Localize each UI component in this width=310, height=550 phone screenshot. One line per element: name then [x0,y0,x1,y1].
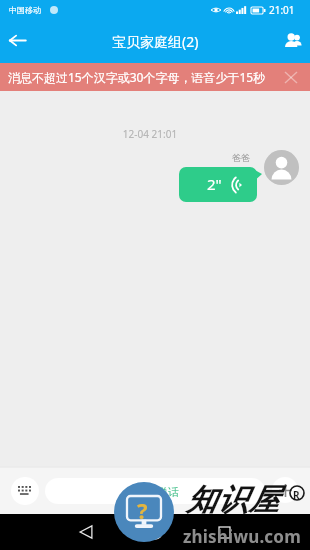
button[interactable]: Back [70,516,102,548]
button[interactable]: 2" [179,167,257,202]
staticText: 消息不超过15个汉字或30个字母，语音少于15秒 [8,69,266,85]
staticText: zhishiwu.com [183,525,301,548]
button[interactable]: Group members [266,19,310,63]
staticText: ? [137,495,148,525]
button[interactable]: Home [139,516,171,548]
button[interactable]: Dismiss [280,63,310,91]
staticText: 宝贝家庭组(2) [112,32,199,51]
button[interactable]: 按住 说话 [45,478,265,504]
button[interactable]: Keyboard [11,477,39,505]
staticText: 爸爸 [232,152,250,163]
staticText: 21:01 [269,3,295,17]
button[interactable]: More [272,477,298,503]
staticText: 知识屋 [186,481,280,519]
staticText: 按住 说话 [132,484,179,499]
staticText: 12-04 21:01 [0,127,300,141]
staticText: 中国移动 [9,5,41,15]
staticText: 2" [207,174,222,194]
button[interactable]: Recents [208,516,240,548]
staticText: R [293,488,300,502]
button[interactable]: Back [0,19,42,63]
